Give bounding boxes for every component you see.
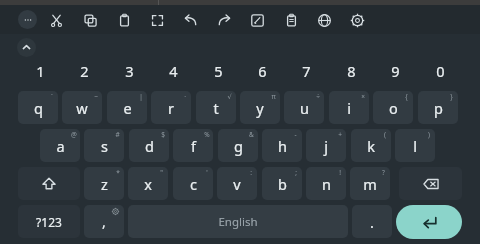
staticText: + [338, 130, 342, 139]
staticText: k [367, 136, 375, 156]
button[interactable]: More options [18, 10, 37, 29]
staticText: % [204, 130, 210, 139]
staticText: @ [71, 130, 77, 139]
button[interactable]: Select all [146, 9, 168, 31]
staticText: 1 [36, 61, 45, 81]
button[interactable]: v [217, 167, 257, 200]
staticText: e [123, 98, 132, 118]
button[interactable]: e [107, 91, 147, 124]
staticText: r [168, 98, 174, 118]
button[interactable]: 8 [329, 58, 373, 84]
button[interactable]: Paste [113, 9, 135, 31]
staticText: English [218, 214, 258, 230]
button[interactable]: g [218, 129, 258, 162]
staticText: . [370, 212, 374, 232]
button[interactable]: Cut [45, 9, 67, 31]
staticText: - [294, 130, 297, 139]
staticText: d [145, 136, 154, 156]
button[interactable]: z [84, 167, 124, 200]
staticText: h [278, 136, 287, 156]
button[interactable]: 7 [284, 58, 328, 84]
button[interactable]: Hide toolbar [17, 38, 36, 57]
button[interactable]: t [196, 91, 236, 124]
staticText: s [101, 136, 108, 156]
button[interactable]: o [373, 91, 413, 124]
staticText: v [233, 174, 241, 194]
staticText: · [184, 92, 186, 101]
button[interactable]: 3 [107, 58, 151, 84]
button[interactable]: English [128, 205, 348, 238]
button[interactable]: x [128, 167, 168, 200]
staticText: π [271, 92, 276, 101]
staticText: l [413, 136, 417, 156]
staticText: w [76, 98, 88, 118]
button[interactable]: k [351, 129, 391, 162]
button[interactable]: 2 [62, 58, 106, 84]
button[interactable]: Enter [396, 205, 462, 239]
button[interactable]: c [173, 167, 213, 200]
button[interactable]: i [329, 91, 369, 124]
button[interactable]: Settings [346, 9, 368, 31]
button[interactable]: l [395, 129, 435, 162]
staticText: p [434, 98, 443, 118]
button[interactable]: 4 [151, 58, 195, 84]
staticText: g [234, 136, 243, 156]
button[interactable]: 1 [18, 58, 62, 84]
staticText: ? [382, 168, 385, 177]
staticText: t [213, 98, 219, 118]
staticText: * [116, 168, 120, 177]
staticText: m [363, 174, 377, 194]
staticText: n [322, 174, 331, 194]
staticText: j [324, 136, 328, 156]
button[interactable]: Backspace [399, 167, 462, 200]
button[interactable]: d [129, 129, 169, 162]
button[interactable]: m [350, 167, 390, 200]
staticText: ÷ [316, 92, 320, 101]
button[interactable]: b [262, 167, 302, 200]
button[interactable]: Redo [213, 9, 235, 31]
button[interactable]: Clipboard [280, 9, 302, 31]
button[interactable]: a [40, 129, 80, 162]
staticText: o [389, 98, 398, 118]
button[interactable]: 0 [418, 58, 462, 84]
button[interactable]: q [18, 91, 58, 124]
button[interactable]: u [284, 91, 324, 124]
button[interactable]: Undo [179, 9, 201, 31]
button[interactable]: Language [313, 9, 335, 31]
staticText: z [101, 174, 108, 194]
staticText: 9 [391, 61, 400, 81]
staticText: x [144, 174, 152, 194]
button[interactable]: y [240, 91, 280, 124]
button[interactable]: j [306, 129, 346, 162]
button[interactable]: s [84, 129, 124, 162]
staticText: 2 [80, 61, 89, 81]
button[interactable]: p [418, 91, 458, 124]
button[interactable]: n [306, 167, 346, 200]
staticText: c [190, 174, 197, 194]
button[interactable]: , [84, 205, 124, 238]
staticText: 5 [214, 61, 223, 81]
button[interactable]: 5 [196, 58, 240, 84]
button[interactable]: r [151, 91, 191, 124]
button[interactable]: Shift [18, 167, 80, 200]
button[interactable]: Edit [246, 9, 268, 31]
staticText: u [300, 98, 309, 118]
staticText: ! [339, 168, 341, 177]
button[interactable]: ?123 [18, 205, 80, 238]
staticText: ` [51, 92, 53, 101]
button[interactable]: . [352, 205, 392, 238]
staticText: 8 [347, 61, 356, 81]
button[interactable]: 9 [373, 58, 417, 84]
staticText: y [256, 98, 264, 118]
button[interactable]: 6 [240, 58, 284, 84]
staticText: 6 [258, 61, 267, 81]
button[interactable]: w [62, 91, 102, 124]
staticText: f [191, 136, 196, 156]
staticText: ?123 [36, 214, 62, 230]
button[interactable]: f [173, 129, 213, 162]
button[interactable]: Copy [79, 9, 101, 31]
button[interactable]: h [262, 129, 302, 162]
staticText: $ [161, 130, 165, 139]
staticText: 4 [169, 61, 178, 81]
staticText: } [450, 92, 453, 101]
